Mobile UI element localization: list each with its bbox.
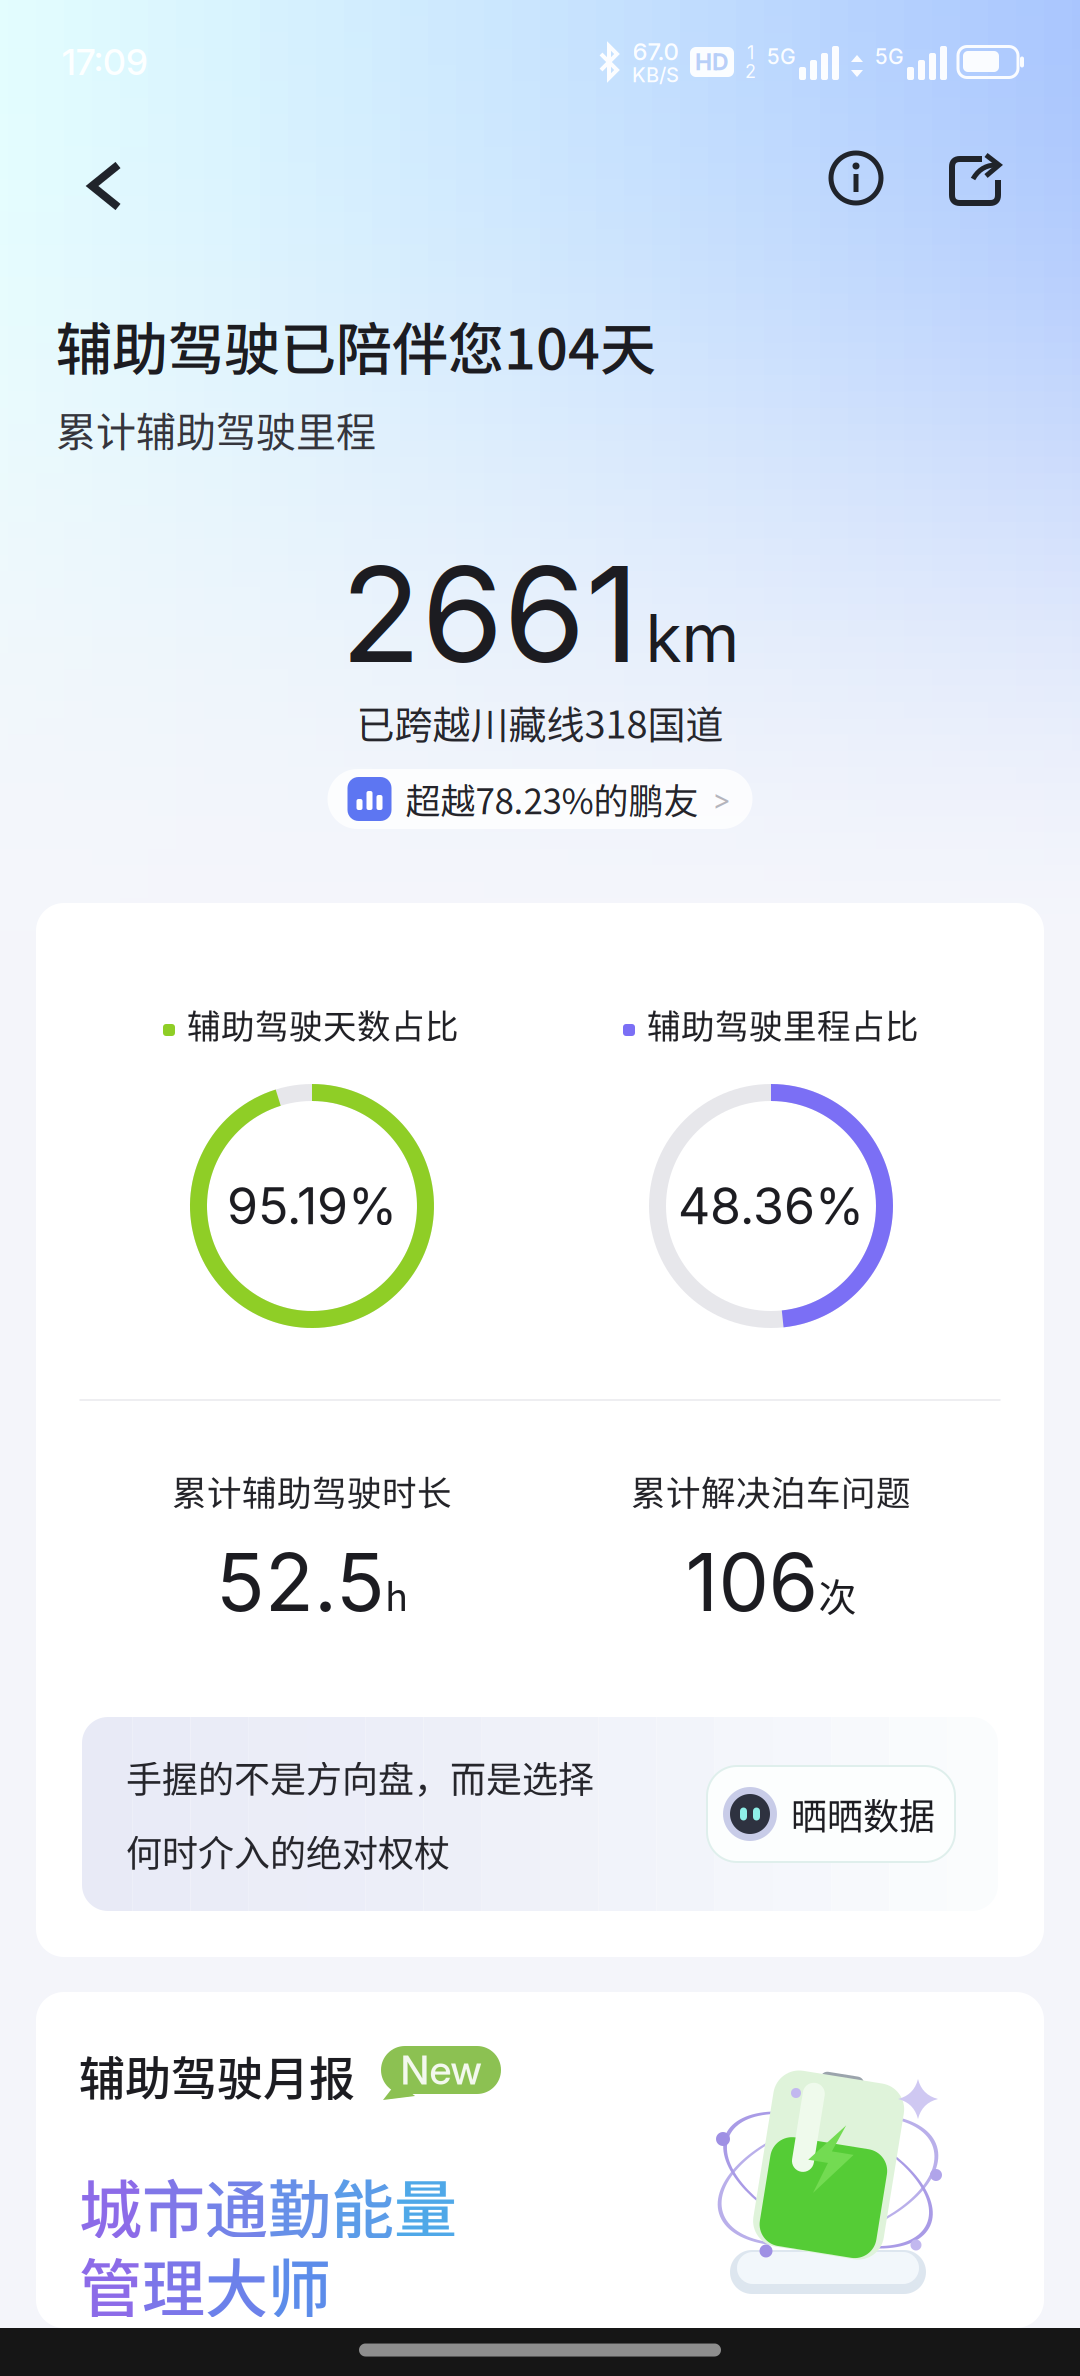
staticText: 手握的不是方向盘，而是选择	[126, 1751, 594, 1803]
staticText: 2	[745, 60, 756, 82]
staticText: 1	[747, 42, 754, 63]
staticText: 勤	[268, 2159, 331, 2251]
staticText: 量	[394, 2159, 457, 2251]
staticText: HD	[695, 48, 729, 76]
staticText: 市	[142, 2159, 205, 2251]
staticText: 辅助驾驶天数占比	[187, 1000, 459, 1048]
staticText: 城	[79, 2159, 142, 2251]
staticText: 2661	[340, 534, 639, 694]
staticText: 5G	[875, 44, 904, 69]
staticText: 理	[142, 2238, 205, 2330]
staticText: 106	[685, 1534, 818, 1630]
staticText: 累计解决泊车问题	[631, 1466, 911, 1516]
staticText: 大	[205, 2238, 268, 2330]
staticText: 5G	[767, 44, 796, 69]
staticText: 能	[331, 2159, 394, 2251]
button[interactable]: 辅助驾驶月报	[36, 1992, 1044, 2328]
staticText: 通	[205, 2159, 268, 2251]
button[interactable]: 超越78.23%的鹏友	[327, 769, 752, 829]
button[interactable]: Info	[808, 130, 904, 226]
staticText: 师	[268, 2238, 331, 2330]
button[interactable]: Back	[57, 138, 153, 234]
staticText: 次	[818, 1567, 856, 1622]
staticText: 晒晒数据	[791, 1788, 935, 1840]
staticText: 已跨越川藏线318国道	[356, 694, 723, 749]
staticText: h	[385, 1567, 408, 1622]
staticText: 17:09	[62, 40, 148, 84]
staticText: 超越78.23%的鹏友	[405, 774, 698, 824]
button[interactable]: 晒晒数据	[707, 1766, 955, 1862]
staticText: 累计辅助驾驶里程	[56, 400, 376, 458]
staticText: 辅助驾驶里程占比	[647, 1000, 919, 1048]
staticText: km	[645, 598, 739, 678]
staticText: 95.19%	[227, 1176, 397, 1236]
staticText: 辅助驾驶已陪伴您104天	[56, 304, 656, 386]
staticText: 52.5	[216, 1534, 385, 1630]
staticText: New	[400, 2046, 481, 2094]
staticText: 何时介入的绝对权杖	[126, 1825, 450, 1877]
button[interactable]: Share	[927, 133, 1023, 229]
staticText: KB/S	[632, 63, 679, 87]
staticText: 67.0	[632, 37, 678, 66]
staticText: 48.36%	[678, 1176, 864, 1236]
staticText: 管	[79, 2238, 142, 2330]
staticText: 辅助驾驶月报	[79, 2042, 355, 2108]
staticText: >	[712, 782, 730, 816]
staticText: 累计辅助驾驶时长	[172, 1466, 452, 1516]
